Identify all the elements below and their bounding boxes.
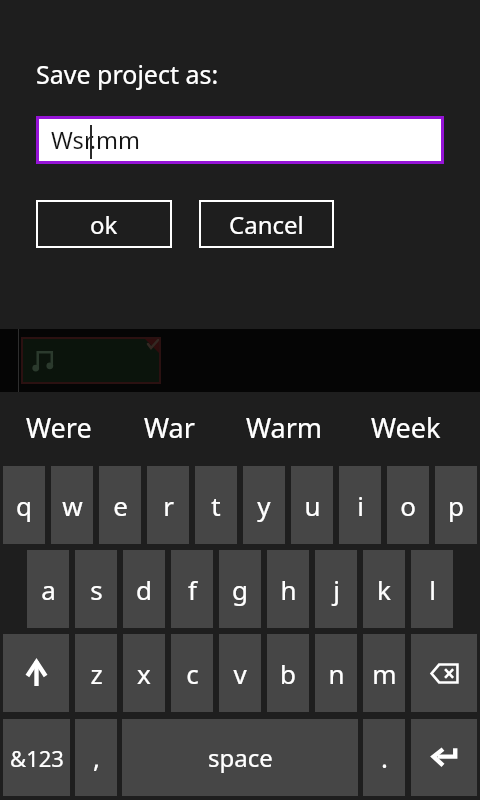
button[interactable]: ok: [36, 200, 172, 248]
staticText: Cancel: [229, 208, 304, 241]
button[interactable]: Enter: [411, 719, 477, 796]
staticText: i: [357, 488, 364, 523]
staticText: y: [257, 488, 271, 523]
staticText: .: [381, 740, 388, 775]
staticText: a: [41, 572, 56, 607]
button[interactable]: Warm: [246, 403, 323, 451]
staticText: ok: [90, 208, 118, 241]
button[interactable]: z: [75, 634, 117, 712]
button[interactable]: War: [144, 403, 195, 451]
staticText: n: [328, 656, 345, 691]
button[interactable]: s: [75, 550, 117, 628]
button[interactable]: Were: [26, 403, 92, 451]
staticText: ,: [93, 740, 100, 775]
button[interactable]: k: [363, 550, 405, 628]
staticText: m: [372, 656, 397, 691]
staticText: Warm: [246, 409, 323, 446]
button[interactable]: a: [27, 550, 69, 628]
button[interactable]: p: [435, 466, 477, 544]
staticText: p: [448, 488, 464, 523]
staticText: War: [144, 409, 195, 446]
button[interactable]: c: [171, 634, 213, 712]
staticText: u: [304, 488, 321, 523]
button[interactable]: ,: [75, 719, 117, 796]
button[interactable]: n: [315, 634, 357, 712]
button[interactable]: Cancel: [199, 200, 334, 248]
button[interactable]: y: [243, 466, 285, 544]
button[interactable]: t: [195, 466, 237, 544]
staticText: h: [280, 572, 297, 607]
staticText: s: [90, 572, 103, 607]
button[interactable]: .: [363, 719, 405, 796]
button[interactable]: b: [267, 634, 309, 712]
button[interactable]: h: [267, 550, 309, 628]
staticText: c: [186, 656, 199, 691]
staticText: d: [136, 572, 152, 607]
staticText: j: [333, 572, 340, 607]
button[interactable]: space: [122, 719, 358, 796]
button[interactable]: q: [3, 466, 45, 544]
button[interactable]: e: [99, 466, 141, 544]
button[interactable]: f: [171, 550, 213, 628]
button[interactable]: Wsr.mm: [39, 119, 441, 161]
button[interactable]: Shift: [3, 634, 69, 712]
staticText: g: [232, 572, 248, 607]
staticText: v: [233, 656, 247, 691]
staticText: f: [188, 572, 197, 607]
button[interactable]: j: [315, 550, 357, 628]
staticText: Save project as:: [36, 57, 219, 91]
staticText: o: [400, 488, 416, 523]
staticText: Wsr.mm: [51, 124, 141, 156]
button[interactable]: m: [363, 634, 405, 712]
staticText: l: [429, 572, 436, 607]
staticText: Were: [26, 409, 92, 446]
staticText: e: [113, 488, 128, 523]
button[interactable]: [21, 337, 161, 384]
staticText: space: [208, 741, 273, 774]
button[interactable]: x: [123, 634, 165, 712]
button[interactable]: i: [339, 466, 381, 544]
button[interactable]: d: [123, 550, 165, 628]
button[interactable]: l: [411, 550, 453, 628]
staticText: x: [137, 656, 151, 691]
button[interactable]: Week: [371, 403, 441, 451]
staticText: Week: [371, 409, 441, 446]
button[interactable]: w: [51, 466, 93, 544]
button[interactable]: o: [387, 466, 429, 544]
staticText: w: [62, 488, 83, 523]
staticText: z: [90, 656, 103, 691]
staticText: q: [16, 488, 32, 523]
button[interactable]: Backspace: [411, 634, 477, 712]
button[interactable]: r: [147, 466, 189, 544]
button[interactable]: &123: [3, 719, 70, 796]
staticText: &123: [10, 743, 64, 773]
button[interactable]: u: [291, 466, 333, 544]
button[interactable]: g: [219, 550, 261, 628]
staticText: b: [280, 656, 296, 691]
staticText: k: [377, 572, 391, 607]
staticText: t: [211, 488, 221, 523]
button[interactable]: v: [219, 634, 261, 712]
staticText: r: [163, 488, 174, 523]
